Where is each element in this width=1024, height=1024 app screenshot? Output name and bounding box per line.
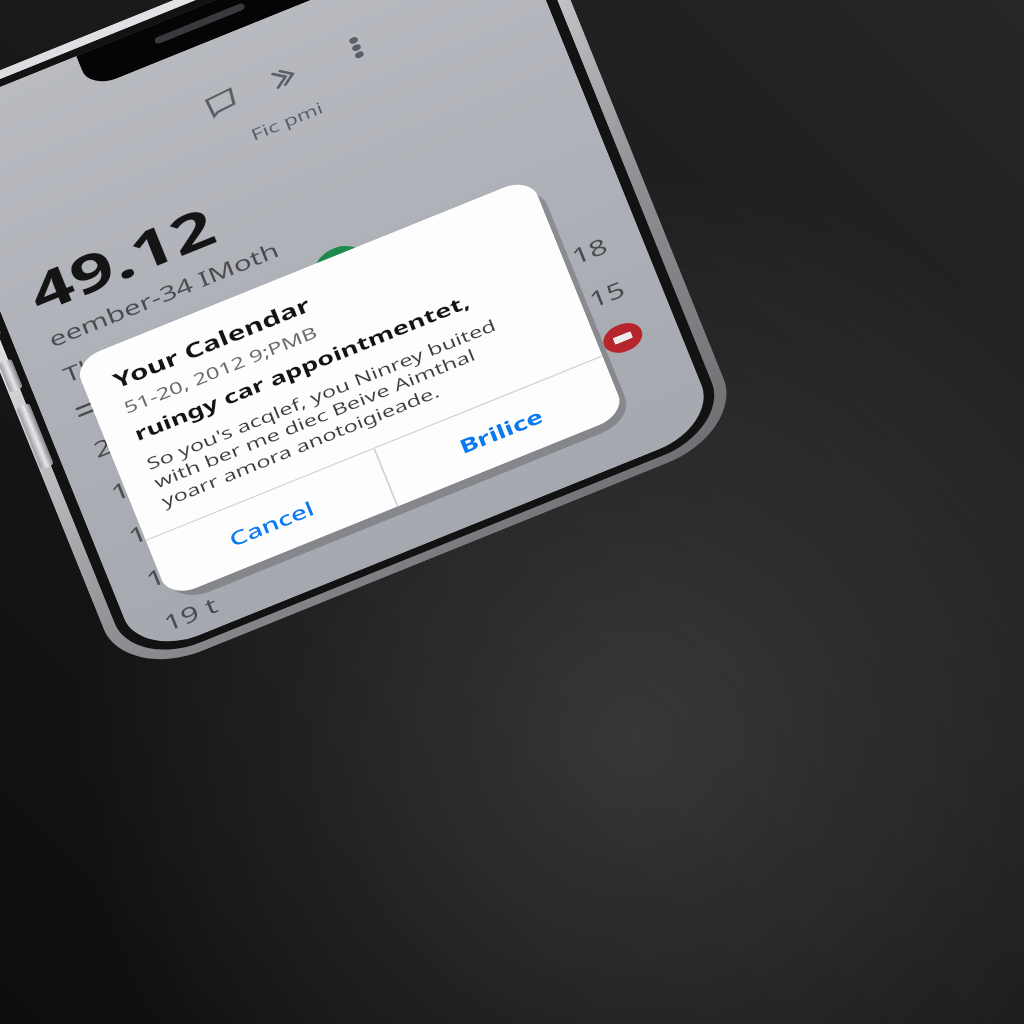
button[interactable]: 12 t	[138, 352, 668, 602]
staticText: Cancel	[225, 495, 318, 553]
staticText: So you's acqlef, you Ninrey buited with …	[143, 313, 515, 512]
staticText: Then	[59, 337, 135, 389]
staticText: 18	[567, 230, 612, 271]
staticText: Your Calendar	[109, 290, 314, 395]
staticText: T	[328, 251, 352, 279]
staticText: 16 h	[106, 457, 177, 508]
button[interactable]: More options	[336, 30, 377, 65]
staticText: 19 t	[159, 590, 222, 638]
staticText: 51-20, 2012 9;PMB	[120, 320, 320, 419]
staticText: 49.12	[18, 190, 225, 328]
staticText: P b	[199, 292, 248, 332]
button[interactable]: Messages	[198, 83, 244, 122]
button[interactable]: Forward	[262, 57, 308, 96]
staticText: Tip	[449, 193, 493, 230]
button[interactable]: 14 s	[120, 309, 650, 559]
button[interactable]: Cancel	[146, 449, 397, 599]
staticText: 24	[546, 339, 592, 380]
staticText: 14 s	[124, 502, 190, 551]
staticText: 21 t	[89, 416, 152, 465]
button[interactable]: Brilice	[375, 356, 626, 506]
staticText: eember-34 IMoth	[44, 235, 283, 353]
button[interactable]: 16 h	[103, 265, 633, 516]
button[interactable]: 21 t	[85, 222, 615, 472]
staticText: 12 t	[141, 546, 204, 595]
staticText: ruingy car appointmentet,	[130, 288, 474, 446]
staticText: Brilice	[455, 402, 547, 460]
button[interactable]: 19 t	[155, 395, 685, 646]
staticText: 15	[584, 274, 630, 315]
staticText: Fic pmi	[247, 97, 326, 145]
